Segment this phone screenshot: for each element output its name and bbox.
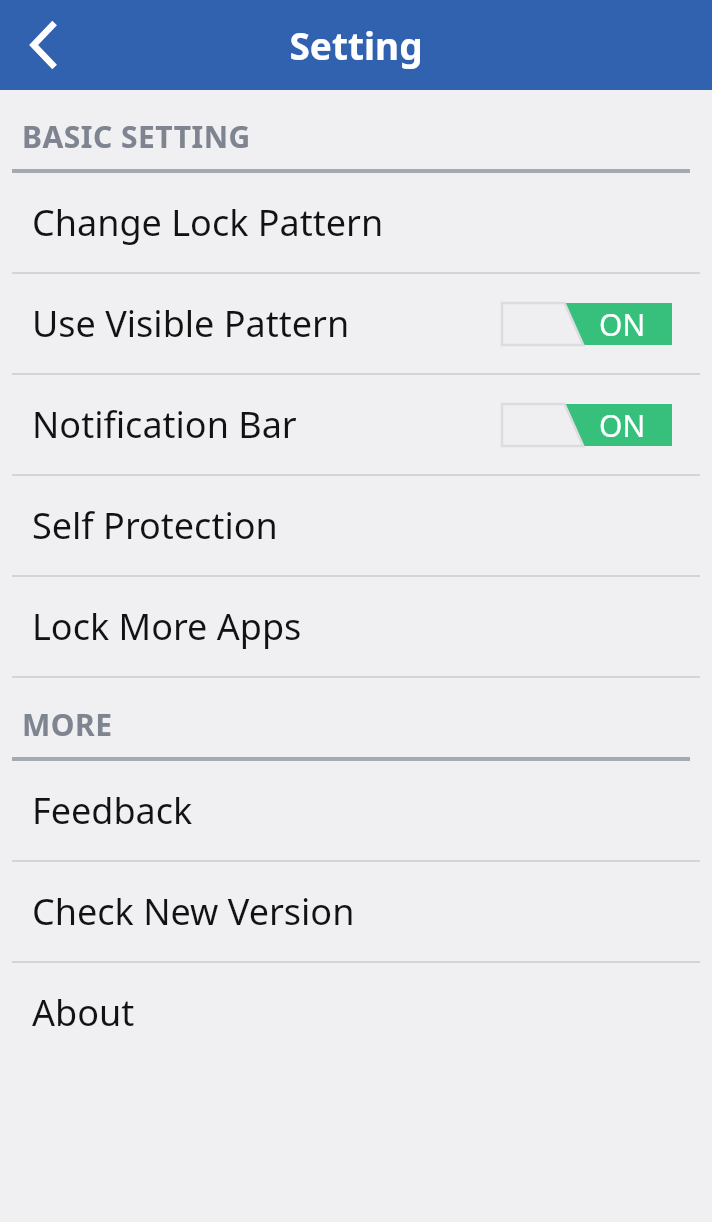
staticText: Feedback [32, 786, 672, 835]
staticText: About [32, 988, 672, 1037]
staticText: ON [599, 304, 646, 345]
staticText: MORE [22, 704, 113, 745]
button[interactable]: Use Visible Pattern [0, 274, 712, 373]
button[interactable]: Notification Bar [0, 375, 712, 474]
staticText: Change Lock Pattern [32, 198, 672, 247]
staticText: BASIC SETTING [22, 116, 251, 157]
button[interactable]: Toggle on [502, 404, 672, 446]
staticText: Lock More Apps [32, 602, 672, 651]
button[interactable]: Change Lock Pattern [0, 173, 712, 272]
button[interactable]: Lock More Apps [0, 577, 712, 676]
staticText: ON [599, 405, 646, 446]
staticText: Check New Version [32, 887, 672, 936]
button[interactable]: Check New Version [0, 862, 712, 961]
button[interactable]: Self Protection [0, 476, 712, 575]
staticText: Notification Bar [32, 400, 502, 449]
button[interactable]: About [0, 963, 712, 1062]
button[interactable]: Feedback [0, 761, 712, 860]
button[interactable]: Toggle on [502, 303, 672, 345]
staticText: Self Protection [32, 501, 672, 550]
staticText: Setting [289, 20, 423, 70]
button[interactable]: Back [0, 0, 90, 90]
staticText: Use Visible Pattern [32, 299, 502, 348]
